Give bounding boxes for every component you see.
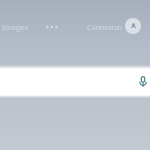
staticText: Connexion <box>87 23 123 33</box>
button[interactable]: Applications Google <box>45 19 59 33</box>
button[interactable]: Recherche vocale <box>0 69 150 95</box>
button[interactable]: Connexion <box>85 20 125 36</box>
button[interactable]: Images <box>0 19 31 35</box>
button[interactable]: Compte Google <box>125 18 141 34</box>
staticText: Images <box>2 22 29 32</box>
button[interactable]: Recherche vocale <box>136 75 150 89</box>
